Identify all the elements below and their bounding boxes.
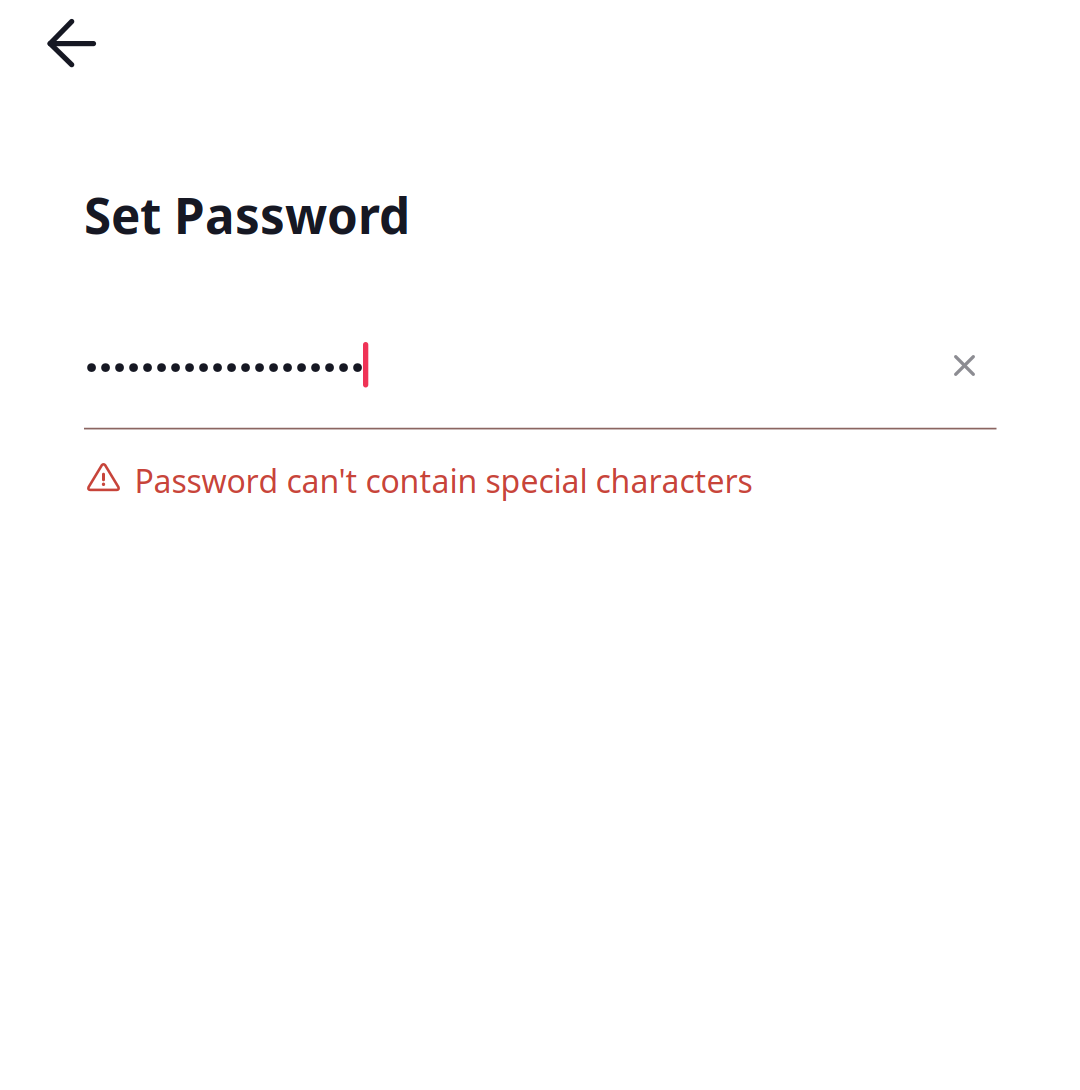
button[interactable]: Password <box>84 320 924 404</box>
staticText: Password can't contain special character… <box>135 459 753 502</box>
button[interactable]: Back <box>20 0 124 88</box>
staticText: Set Password <box>84 182 410 247</box>
button[interactable]: Clear text <box>924 325 1004 405</box>
